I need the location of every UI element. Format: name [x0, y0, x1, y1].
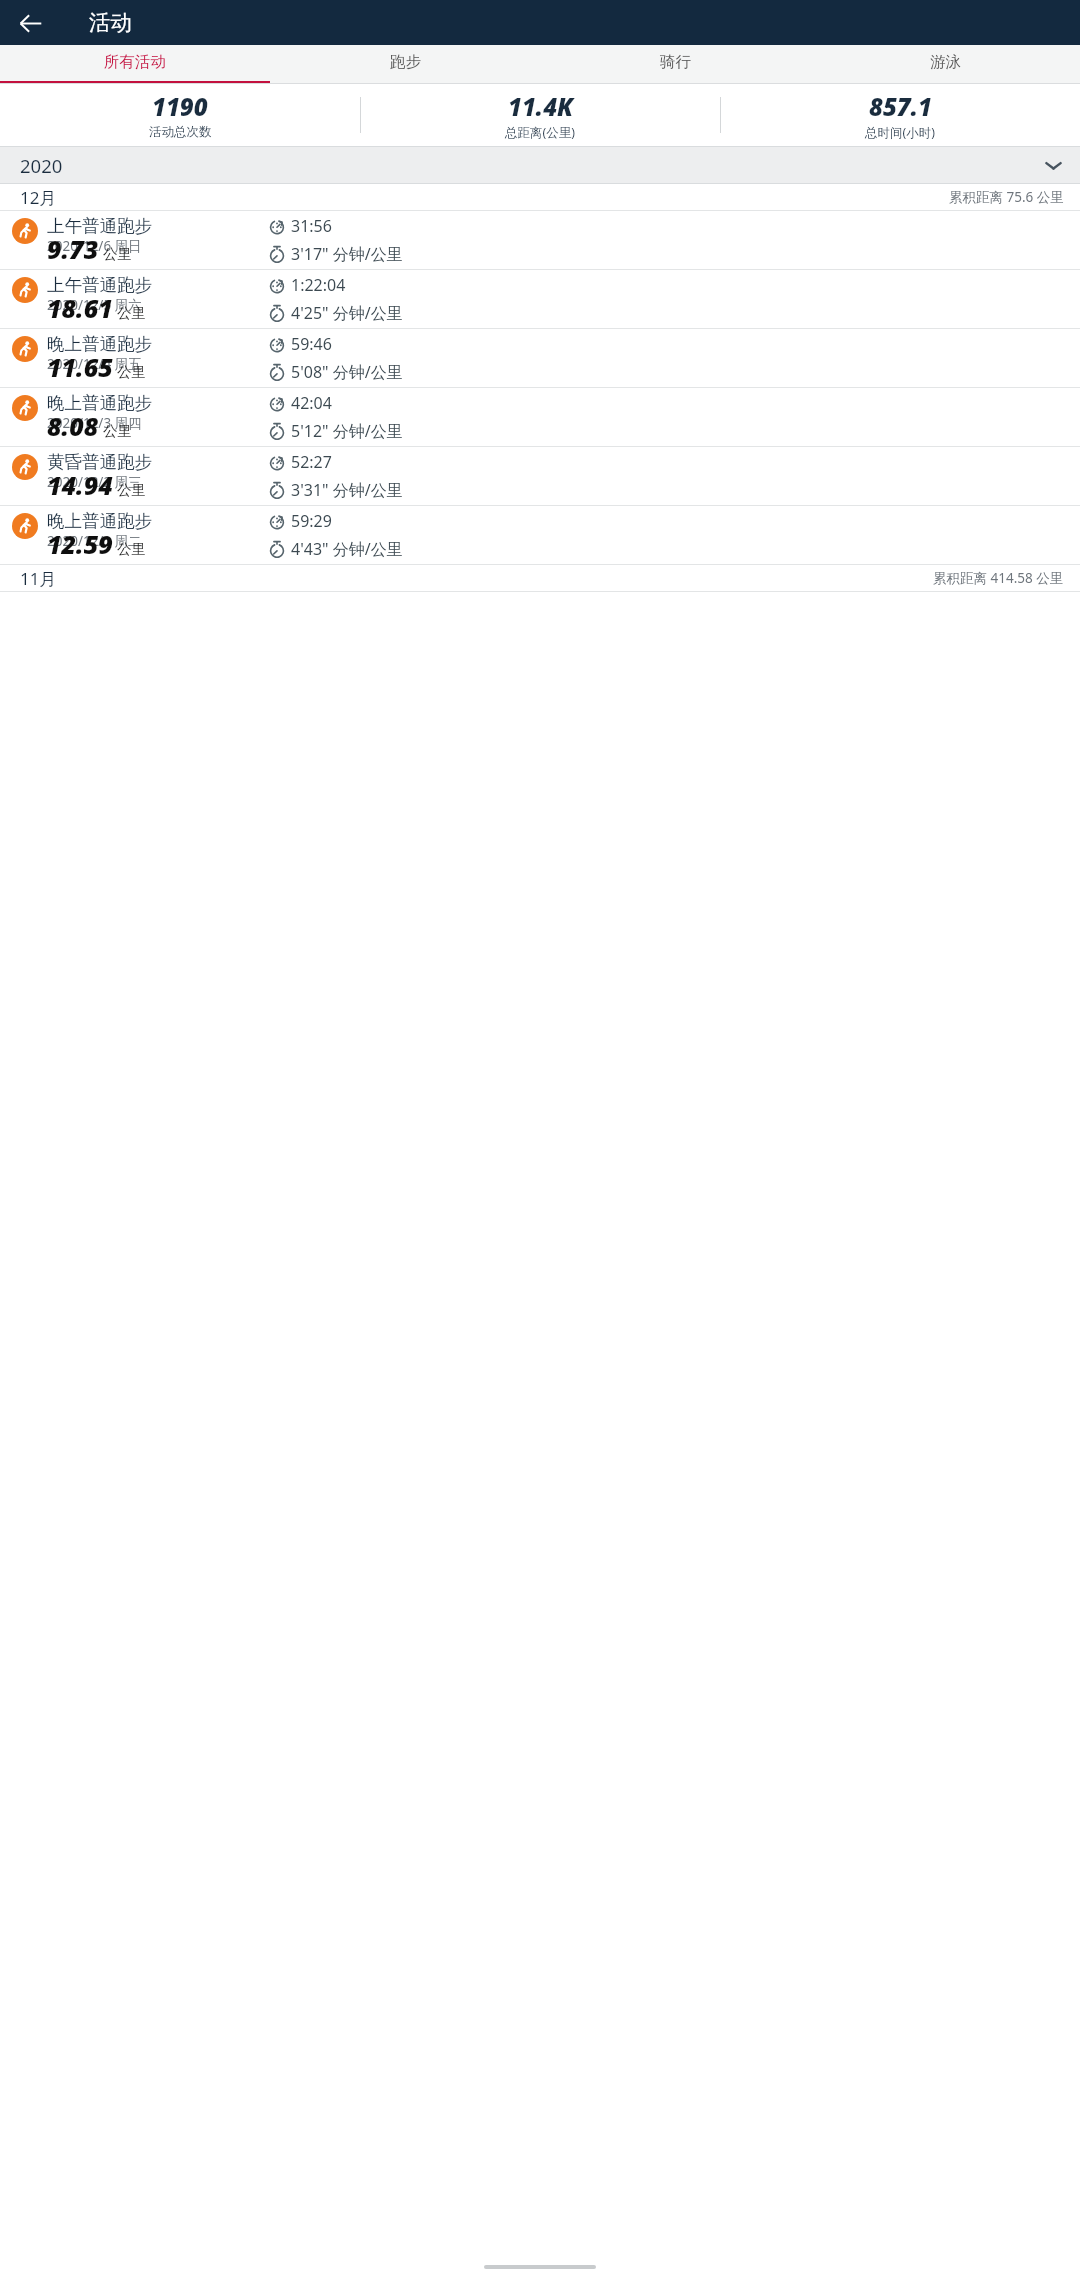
- staticText: 11.65: [47, 350, 113, 384]
- staticText: 上午普通跑步: [47, 215, 152, 237]
- staticText: 累积距离 75.6 公里: [949, 188, 1064, 206]
- staticText: 活动: [89, 9, 132, 36]
- staticText: 3'31" 分钟/公里: [291, 479, 403, 501]
- staticText: 2020/12/3 周四: [47, 414, 142, 432]
- button[interactable]: 跑步: [270, 45, 540, 83]
- staticText: 11.4K: [508, 90, 574, 123]
- staticText: 公里: [103, 245, 132, 263]
- button[interactable]: 上午普通跑步: [0, 270, 1080, 328]
- staticText: 黄昏普通跑步: [47, 451, 152, 473]
- staticText: 公里: [117, 304, 146, 322]
- staticText: 1:22:04: [291, 274, 346, 296]
- staticText: 跑步: [390, 52, 421, 72]
- button[interactable]: 晚上普通跑步: [0, 388, 1080, 446]
- button[interactable]: 2020: [0, 147, 1080, 183]
- staticText: 总距离(公里): [505, 124, 576, 141]
- staticText: 9.73: [47, 232, 99, 266]
- staticText: 2020/12/6 周日: [47, 237, 142, 255]
- staticText: 公里: [103, 422, 132, 440]
- button[interactable]: Back: [9, 2, 51, 44]
- staticText: 累积距离 414.58 公里: [933, 569, 1064, 587]
- staticText: 晚上普通跑步: [47, 333, 152, 355]
- other: Collapse year: [1040, 152, 1066, 178]
- staticText: 2020/12/1 周二: [47, 532, 142, 550]
- staticText: 骑行: [660, 52, 691, 72]
- staticText: 2020/12/4 周五: [47, 355, 142, 373]
- staticText: 18.61: [47, 291, 113, 325]
- staticText: 公里: [117, 363, 146, 381]
- staticText: 公里: [117, 540, 146, 558]
- staticText: 公里: [117, 481, 146, 499]
- staticText: 52:27: [291, 451, 332, 473]
- button[interactable]: 黄昏普通跑步: [0, 447, 1080, 505]
- staticText: 晚上普通跑步: [47, 510, 152, 532]
- staticText: 总时间(小时): [865, 124, 936, 141]
- staticText: 2020: [20, 153, 63, 178]
- staticText: 31:56: [291, 215, 332, 237]
- staticText: 5'12" 分钟/公里: [291, 420, 403, 442]
- button[interactable]: 晚上普通跑步: [0, 506, 1080, 564]
- button[interactable]: 上午普通跑步: [0, 211, 1080, 269]
- staticText: 上午普通跑步: [47, 274, 152, 296]
- staticText: 857.1: [869, 90, 933, 123]
- staticText: 8.08: [47, 409, 99, 443]
- staticText: 59:29: [291, 510, 332, 532]
- staticText: 4'43" 分钟/公里: [291, 538, 403, 560]
- staticText: 游泳: [930, 52, 961, 72]
- staticText: 活动总次数: [149, 124, 212, 140]
- staticText: 11月: [20, 567, 57, 590]
- staticText: 12月: [20, 186, 57, 209]
- button[interactable]: 游泳: [810, 45, 1080, 83]
- staticText: 4'25" 分钟/公里: [291, 302, 403, 324]
- staticText: 所有活动: [104, 52, 166, 72]
- staticText: 3'17" 分钟/公里: [291, 243, 403, 265]
- staticText: 2020/12/5 周六: [47, 296, 142, 314]
- button[interactable]: 骑行: [540, 45, 810, 83]
- staticText: 1190: [152, 90, 208, 123]
- staticText: 2020/12/2 周三: [47, 473, 142, 491]
- button[interactable]: 所有活动: [0, 45, 270, 83]
- staticText: 晚上普通跑步: [47, 392, 152, 414]
- staticText: 14.94: [47, 468, 113, 502]
- button[interactable]: 晚上普通跑步: [0, 329, 1080, 387]
- staticText: 42:04: [291, 392, 332, 414]
- staticText: 59:46: [291, 333, 332, 355]
- staticText: 12.59: [47, 527, 113, 561]
- staticText: 5'08" 分钟/公里: [291, 361, 403, 383]
